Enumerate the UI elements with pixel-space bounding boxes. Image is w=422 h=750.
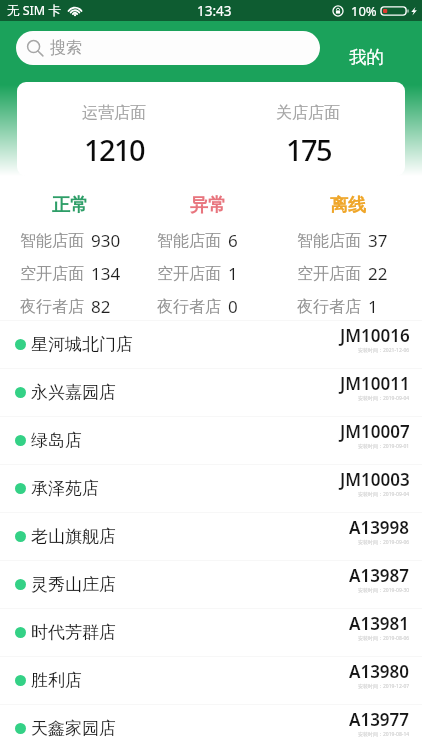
staticText: 1 — [228, 262, 238, 282]
staticText: 时代芳群店 — [31, 622, 116, 643]
button[interactable]: 时代芳群店 — [0, 608, 422, 656]
staticText: 搜索 — [50, 38, 82, 58]
staticText: 175 — [286, 130, 331, 169]
staticText: 夜行者店 — [20, 297, 84, 317]
staticText: 0 — [228, 295, 238, 315]
staticText: 安装时间：2019-09-04 — [358, 491, 410, 498]
staticText: 星河城北门店 — [31, 334, 133, 355]
staticText: 1210 — [84, 130, 144, 169]
button[interactable]: 天鑫家园店 — [0, 704, 422, 750]
button[interactable]: 搜索 — [16, 31, 320, 65]
staticText: 夜行者店 — [157, 297, 221, 317]
staticText: JM10007 — [340, 420, 410, 443]
button[interactable]: 离线 — [281, 194, 422, 317]
staticText: 老山旗舰店 — [31, 526, 116, 547]
button[interactable]: 永兴嘉园店 — [0, 368, 422, 416]
staticText: 安装时间：2019-09-06 — [358, 539, 410, 546]
staticText: 智能店面 — [157, 231, 221, 251]
staticText: 10% — [351, 2, 377, 20]
staticText: 离线 — [330, 194, 366, 217]
staticText: 智能店面 — [297, 231, 361, 251]
staticText: 绿岛店 — [31, 430, 82, 451]
button[interactable]: 我的 — [339, 41, 394, 73]
staticText: 空开店面 — [297, 264, 361, 284]
staticText: 安装时间：2019-09-01 — [358, 443, 410, 450]
button[interactable]: 承泽苑店 — [0, 464, 422, 512]
staticText: 安装时间：2019-12-07 — [358, 683, 410, 690]
staticText: 天鑫家园店 — [31, 718, 116, 739]
staticText: 安装时间：2019-08-06 — [358, 635, 410, 642]
button[interactable]: 老山旗舰店 — [0, 512, 422, 560]
staticText: 空开店面 — [20, 264, 84, 284]
button[interactable]: 星河城北门店 — [0, 320, 422, 368]
staticText: A13998 — [349, 516, 410, 539]
staticText: 关店店面 — [276, 103, 340, 123]
staticText: 夜行者店 — [297, 297, 361, 317]
staticText: 灵秀山庄店 — [31, 574, 116, 595]
button[interactable]: 关店店面 — [211, 82, 405, 176]
staticText: 永兴嘉园店 — [31, 382, 116, 403]
staticText: 22 — [368, 262, 388, 282]
staticText: 无 SIM 卡 — [7, 2, 61, 19]
staticText: 胜利店 — [31, 670, 82, 691]
staticText: 930 — [91, 229, 121, 249]
staticText: 承泽苑店 — [31, 478, 99, 499]
staticText: 正常 — [52, 194, 88, 217]
staticText: 37 — [368, 229, 388, 249]
staticText: 我的 — [349, 46, 384, 68]
staticText: JM10003 — [340, 468, 410, 491]
button[interactable]: 正常 — [0, 194, 140, 317]
staticText: 安装时间：2021-12-06 — [358, 347, 410, 354]
staticText: 6 — [228, 229, 238, 249]
staticText: 安装时间：2019-09-30 — [358, 587, 410, 594]
staticText: A13981 — [349, 612, 410, 635]
staticText: 82 — [91, 295, 111, 315]
staticText: 智能店面 — [20, 231, 84, 251]
staticText: 13:43 — [197, 2, 232, 20]
button[interactable]: 绿岛店 — [0, 416, 422, 464]
staticText: 安装时间：2019-08-14 — [358, 731, 410, 738]
staticText: 异常 — [190, 194, 226, 217]
button[interactable]: 胜利店 — [0, 656, 422, 704]
staticText: 运营店面 — [82, 103, 146, 123]
staticText: 134 — [91, 262, 121, 282]
staticText: A13980 — [349, 660, 410, 683]
button[interactable]: 运营店面 — [17, 82, 211, 176]
button[interactable]: 灵秀山庄店 — [0, 560, 422, 608]
staticText: A13977 — [349, 708, 410, 731]
staticText: 安装时间：2019-09-04 — [358, 395, 410, 402]
staticText: JM10011 — [340, 372, 410, 395]
button[interactable]: 异常 — [140, 194, 281, 317]
staticText: 1 — [368, 295, 378, 315]
staticText: A13987 — [349, 564, 410, 587]
staticText: JM10016 — [340, 324, 410, 347]
staticText: 空开店面 — [157, 264, 221, 284]
